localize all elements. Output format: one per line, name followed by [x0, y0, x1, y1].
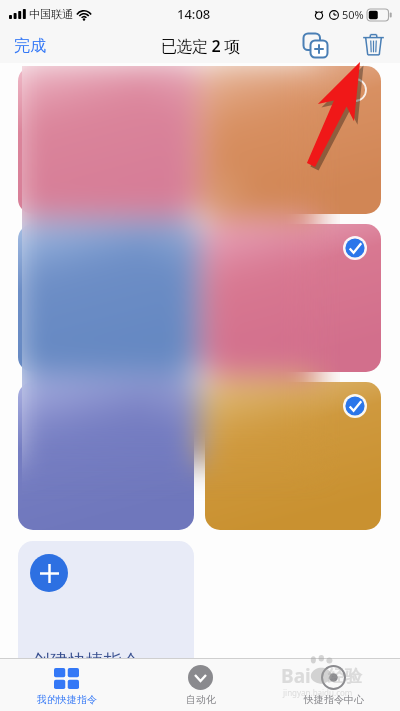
staticText: 经验	[328, 666, 362, 687]
button[interactable]: 创建快捷指令	[18, 541, 194, 683]
button[interactable]	[18, 66, 194, 214]
button[interactable]	[18, 382, 194, 530]
button[interactable]: 完成	[0, 31, 60, 61]
button[interactable]: 快捷指令中心	[267, 659, 400, 711]
staticText: 创建快捷指令	[32, 650, 140, 673]
button[interactable]: 的	[205, 66, 381, 214]
staticText: 中国联通	[29, 7, 73, 21]
staticText: 快捷指令中心	[304, 693, 364, 706]
button[interactable]	[22, 220, 198, 376]
staticText: 已选定 2 项	[161, 35, 240, 57]
staticText: Bai	[281, 663, 311, 689]
button[interactable]: 的	[201, 66, 340, 218]
button[interactable]	[201, 220, 340, 376]
staticText: 的	[219, 182, 235, 202]
staticText: jingyan.baidu.com	[283, 687, 353, 698]
button[interactable]	[205, 382, 381, 530]
button[interactable]	[22, 66, 198, 218]
button[interactable]	[18, 224, 194, 372]
staticText: 完成	[14, 36, 46, 56]
staticText: 14:08	[177, 5, 211, 23]
staticText: 自动化	[186, 693, 216, 706]
button[interactable]: Delete	[358, 29, 389, 62]
staticText: 50%	[342, 7, 364, 22]
staticText: 我的快捷指令	[37, 693, 97, 706]
button[interactable]	[201, 378, 340, 530]
button[interactable]	[22, 378, 198, 530]
button[interactable]: 我的快捷指令	[0, 659, 133, 711]
button[interactable]	[205, 224, 381, 372]
button[interactable]: Duplicate	[299, 29, 332, 62]
staticText: 的	[219, 182, 235, 202]
button[interactable]: 自动化	[134, 659, 267, 711]
